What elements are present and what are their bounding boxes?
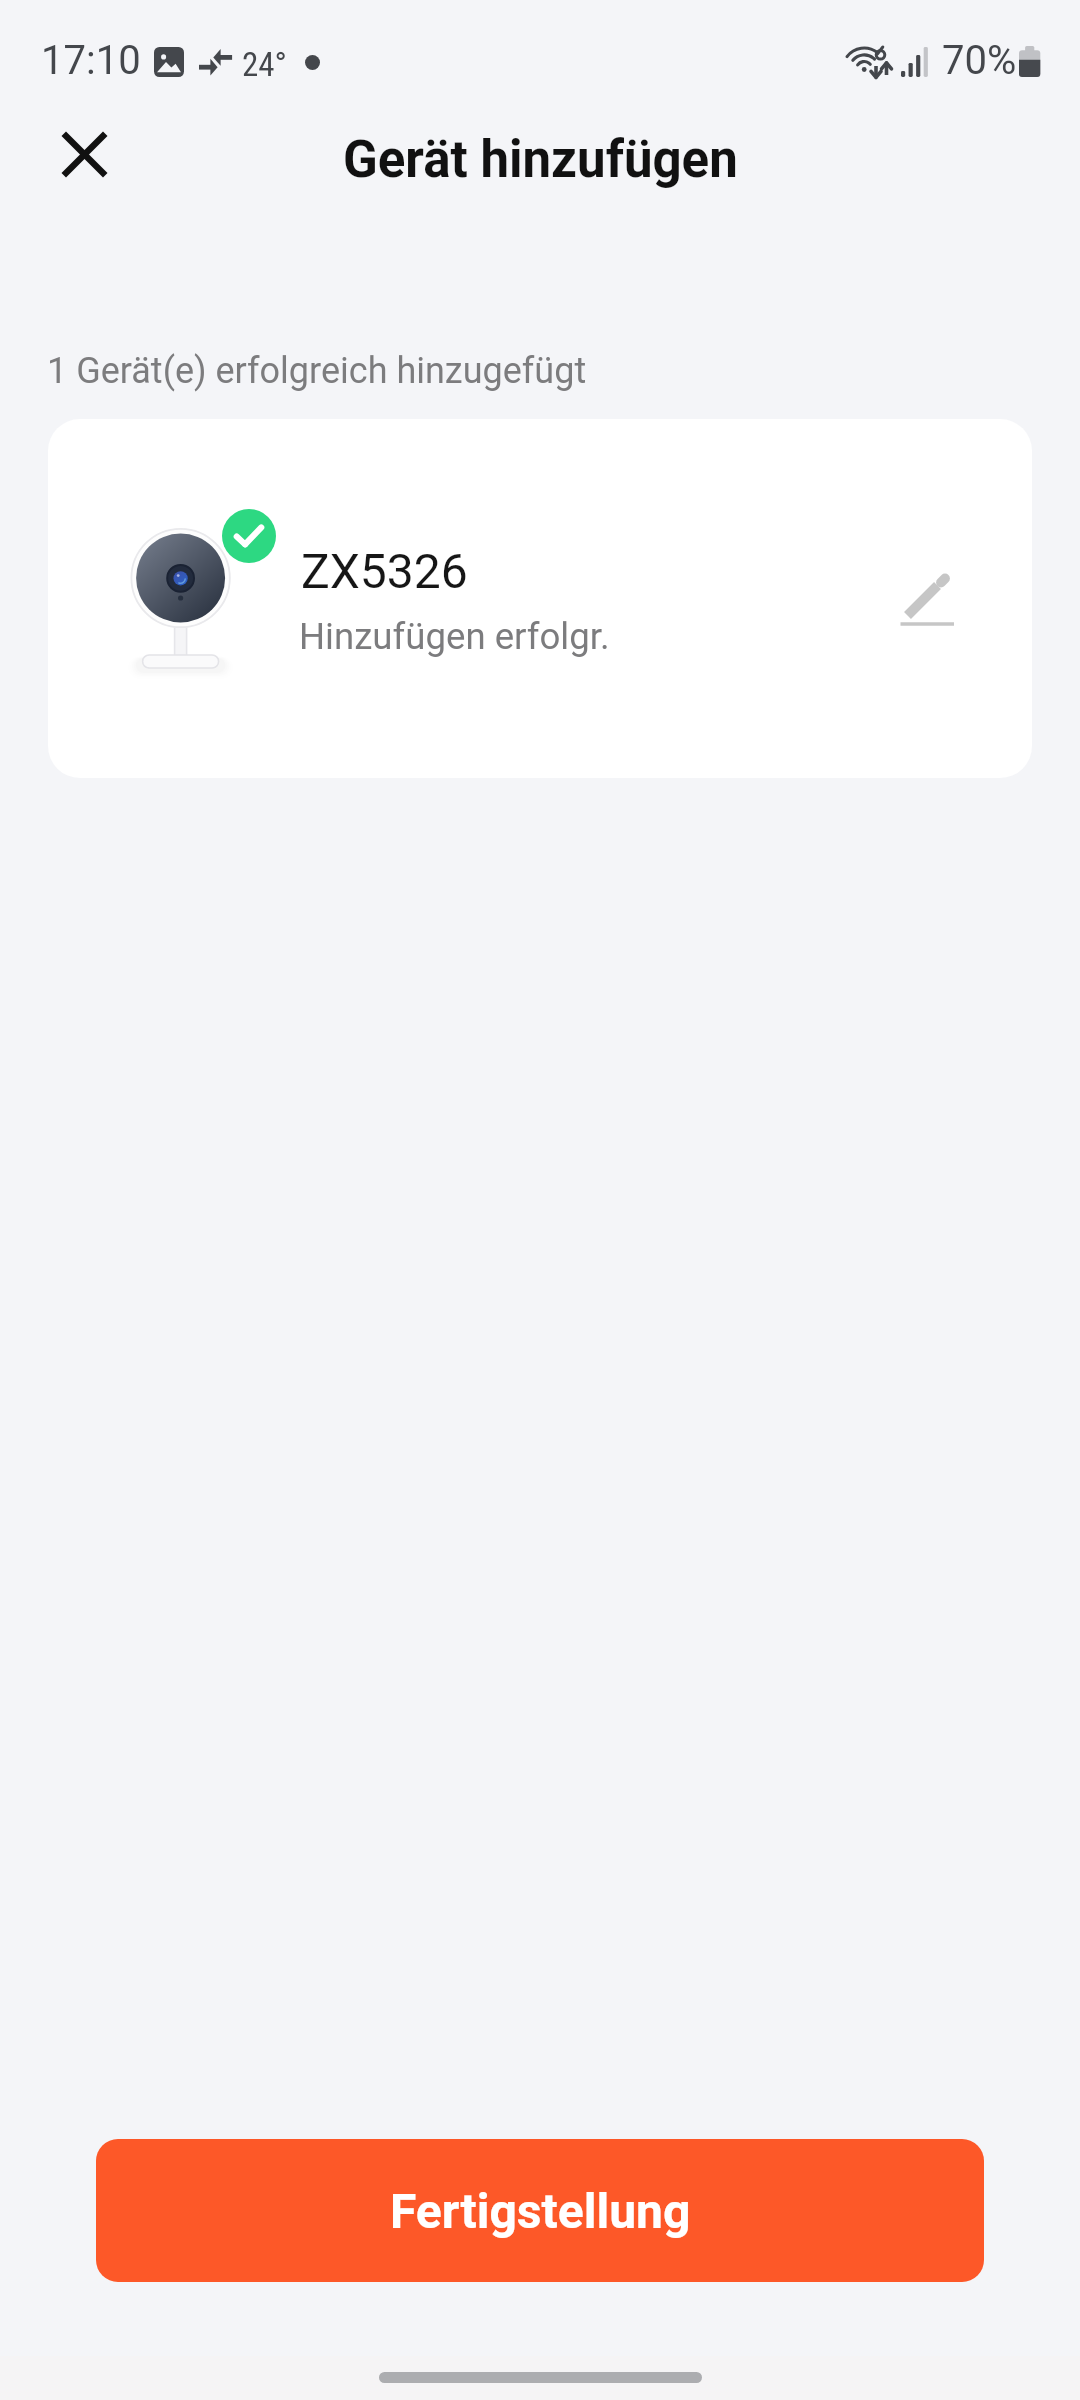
button[interactable]: Schließen bbox=[36, 106, 132, 202]
staticText: Hinzufügen erfolgr. bbox=[299, 615, 610, 658]
staticText: 24° bbox=[242, 45, 287, 84]
staticText: Fertigstellung bbox=[390, 2183, 691, 2239]
staticText: Gerät hinzufügen bbox=[343, 130, 738, 190]
staticText: 1 Gerät(e) erfolgreich hinzugefügt bbox=[47, 350, 587, 392]
staticText: 70% bbox=[942, 37, 1017, 84]
button[interactable]: ZX5326 bbox=[48, 419, 1032, 778]
staticText: 17:10 bbox=[41, 37, 141, 84]
button[interactable]: Umbenennen bbox=[865, 534, 1001, 670]
staticText: ZX5326 bbox=[301, 543, 468, 599]
button[interactable]: Fertigstellung bbox=[96, 2139, 984, 2282]
